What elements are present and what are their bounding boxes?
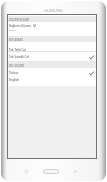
button[interactable]: Tek Tekli Cal: [8, 42, 96, 52]
button[interactable]: Türkçe: [8, 68, 96, 76]
button[interactable]: Tek Surekli Cal: [8, 52, 96, 61]
button[interactable]: Home: [43, 169, 59, 174]
button[interactable]: Back: [73, 170, 77, 173]
staticText: SES AYARI: [9, 38, 23, 42]
staticText: DÜZEN SEÇIMI: [9, 18, 30, 22]
button[interactable]: Bağlantı Düzeni - M: [8, 22, 96, 36]
staticText: English: [9, 78, 19, 82]
staticText: Tek Surekli Cal: [9, 55, 29, 59]
staticText: SAMSUNG: [44, 8, 63, 13]
staticText: Düzen: [9, 29, 16, 32]
button[interactable]: Recent apps: [25, 170, 28, 173]
staticText: Bağlantı Düzeni - M: [9, 24, 36, 28]
staticText: Tek Tekli Cal: [9, 48, 26, 52]
button[interactable]: English: [8, 76, 96, 86]
staticText: Türkçe: [9, 71, 19, 75]
other: Selected: [89, 55, 94, 60]
staticText: DİL SEÇİMİ: [9, 64, 25, 68]
other: Selected: [89, 71, 94, 76]
